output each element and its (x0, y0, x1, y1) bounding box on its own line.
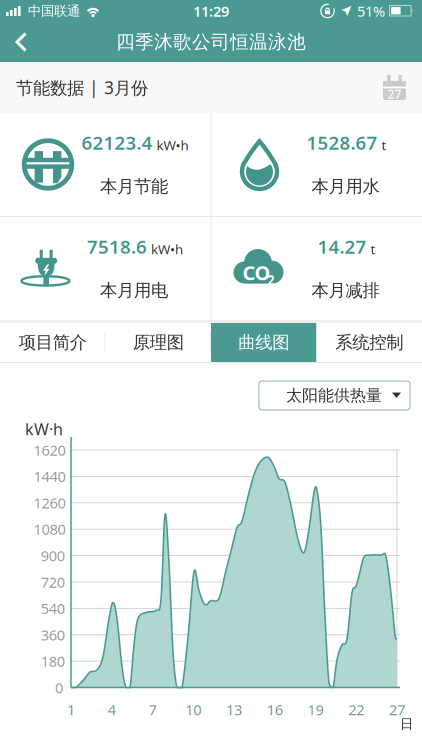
staticText: 1 (67, 700, 75, 719)
staticText: 4 (108, 700, 116, 719)
staticText: t (370, 240, 375, 258)
staticText: 1260 (34, 493, 66, 512)
staticText: 62123.4 (81, 130, 152, 155)
staticText: 27 (387, 86, 401, 102)
staticText: 项目简介 (19, 332, 87, 353)
staticText: 7518.6 (87, 234, 147, 259)
button[interactable]: Back (0, 24, 28, 59)
staticText: 14.27 (317, 234, 366, 259)
staticText: 19 (307, 700, 323, 719)
staticText: 11:29 (193, 1, 229, 21)
button[interactable]: 太阳能供热量 (259, 381, 410, 410)
staticText: 四季沐歌公司恒温泳池 (116, 30, 306, 53)
staticText: 360 (41, 625, 65, 644)
staticText: 27 (389, 700, 405, 719)
staticText: 720 (41, 572, 65, 592)
staticText: 节能数据 | 3月份 (16, 76, 148, 99)
button[interactable]: 项目简介 (0, 323, 105, 362)
staticText: kW•h (156, 136, 188, 154)
staticText: 16 (267, 700, 283, 719)
staticText: 180 (41, 651, 65, 671)
staticText: 51% (357, 1, 385, 21)
staticText: 本月减排 (311, 280, 379, 301)
button[interactable]: 系统控制 (316, 323, 422, 362)
staticText: 本月用电 (100, 280, 168, 301)
staticText: kW·h (25, 418, 63, 440)
button[interactable]: 曲线图 (211, 323, 316, 362)
staticText: 10 (185, 700, 201, 719)
staticText: 日 (400, 716, 413, 732)
staticText: 900 (41, 546, 65, 565)
staticText: 系统控制 (335, 332, 403, 353)
staticText: 原理图 (133, 332, 184, 353)
staticText: 7 (148, 700, 156, 719)
staticText: t (381, 136, 386, 154)
staticText: 0 (55, 678, 63, 697)
staticText: 1440 (34, 467, 66, 486)
staticText: 1620 (34, 440, 66, 460)
staticText: 太阳能供热量 (286, 386, 382, 405)
staticText: 本月用水 (311, 176, 379, 197)
staticText: 本月节能 (100, 176, 168, 197)
staticText: 中国联通 (28, 3, 80, 19)
staticText: 1080 (34, 519, 66, 539)
staticText: kW•h (151, 240, 183, 258)
staticText: 2 (267, 271, 275, 289)
staticText: 13 (226, 700, 242, 719)
staticText: 曲线图 (238, 332, 289, 353)
button[interactable]: 原理图 (105, 323, 211, 362)
staticText: CO (242, 259, 270, 286)
staticText: 540 (41, 599, 65, 618)
staticText: 1528.67 (306, 130, 377, 155)
staticText: 22 (348, 700, 364, 719)
button[interactable]: 选择日期 (383, 71, 406, 104)
